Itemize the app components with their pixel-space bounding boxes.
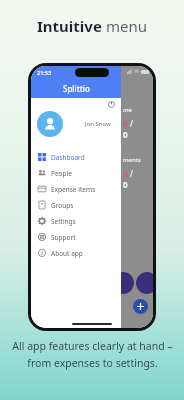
staticText: Intuitive: [37, 16, 106, 36]
button[interactable]: Settings: [31, 213, 121, 229]
staticText: 0: [123, 118, 128, 129]
staticText: from expenses to settings.: [27, 356, 158, 370]
staticText: 21:53: [37, 69, 52, 76]
staticText: Expense items: [51, 185, 96, 194]
button[interactable]: Expense items: [31, 181, 121, 197]
staticText: Groups: [51, 201, 74, 210]
staticText: About app: [51, 249, 83, 258]
staticText: me: [123, 106, 132, 114]
staticText: 0: [123, 168, 128, 179]
staticText: ments: [123, 156, 141, 164]
button[interactable]: Jon Snow: [37, 111, 117, 137]
staticText: Support: [51, 233, 76, 242]
staticText: All app features clearly at hand –: [12, 339, 173, 353]
button[interactable]: Groups: [31, 197, 121, 213]
staticText: Jon Snow: [85, 120, 111, 128]
staticText: Splittio: [63, 83, 90, 94]
staticText: 0: [123, 179, 128, 190]
staticText: 0: [123, 129, 128, 140]
button[interactable]: Dashboard: [31, 149, 121, 165]
button[interactable]: About app: [31, 245, 121, 261]
button[interactable]: Support: [31, 229, 121, 245]
staticText: Settings: [51, 217, 76, 226]
staticText: Dashboard: [51, 153, 85, 162]
staticText: /: [128, 118, 134, 129]
button[interactable]: People: [31, 165, 121, 181]
staticText: menu: [106, 16, 148, 36]
button[interactable]: Log out: [106, 99, 117, 110]
staticText: /: [128, 168, 134, 179]
button[interactable]: Add expense: [133, 299, 148, 314]
staticText: People: [51, 169, 72, 178]
